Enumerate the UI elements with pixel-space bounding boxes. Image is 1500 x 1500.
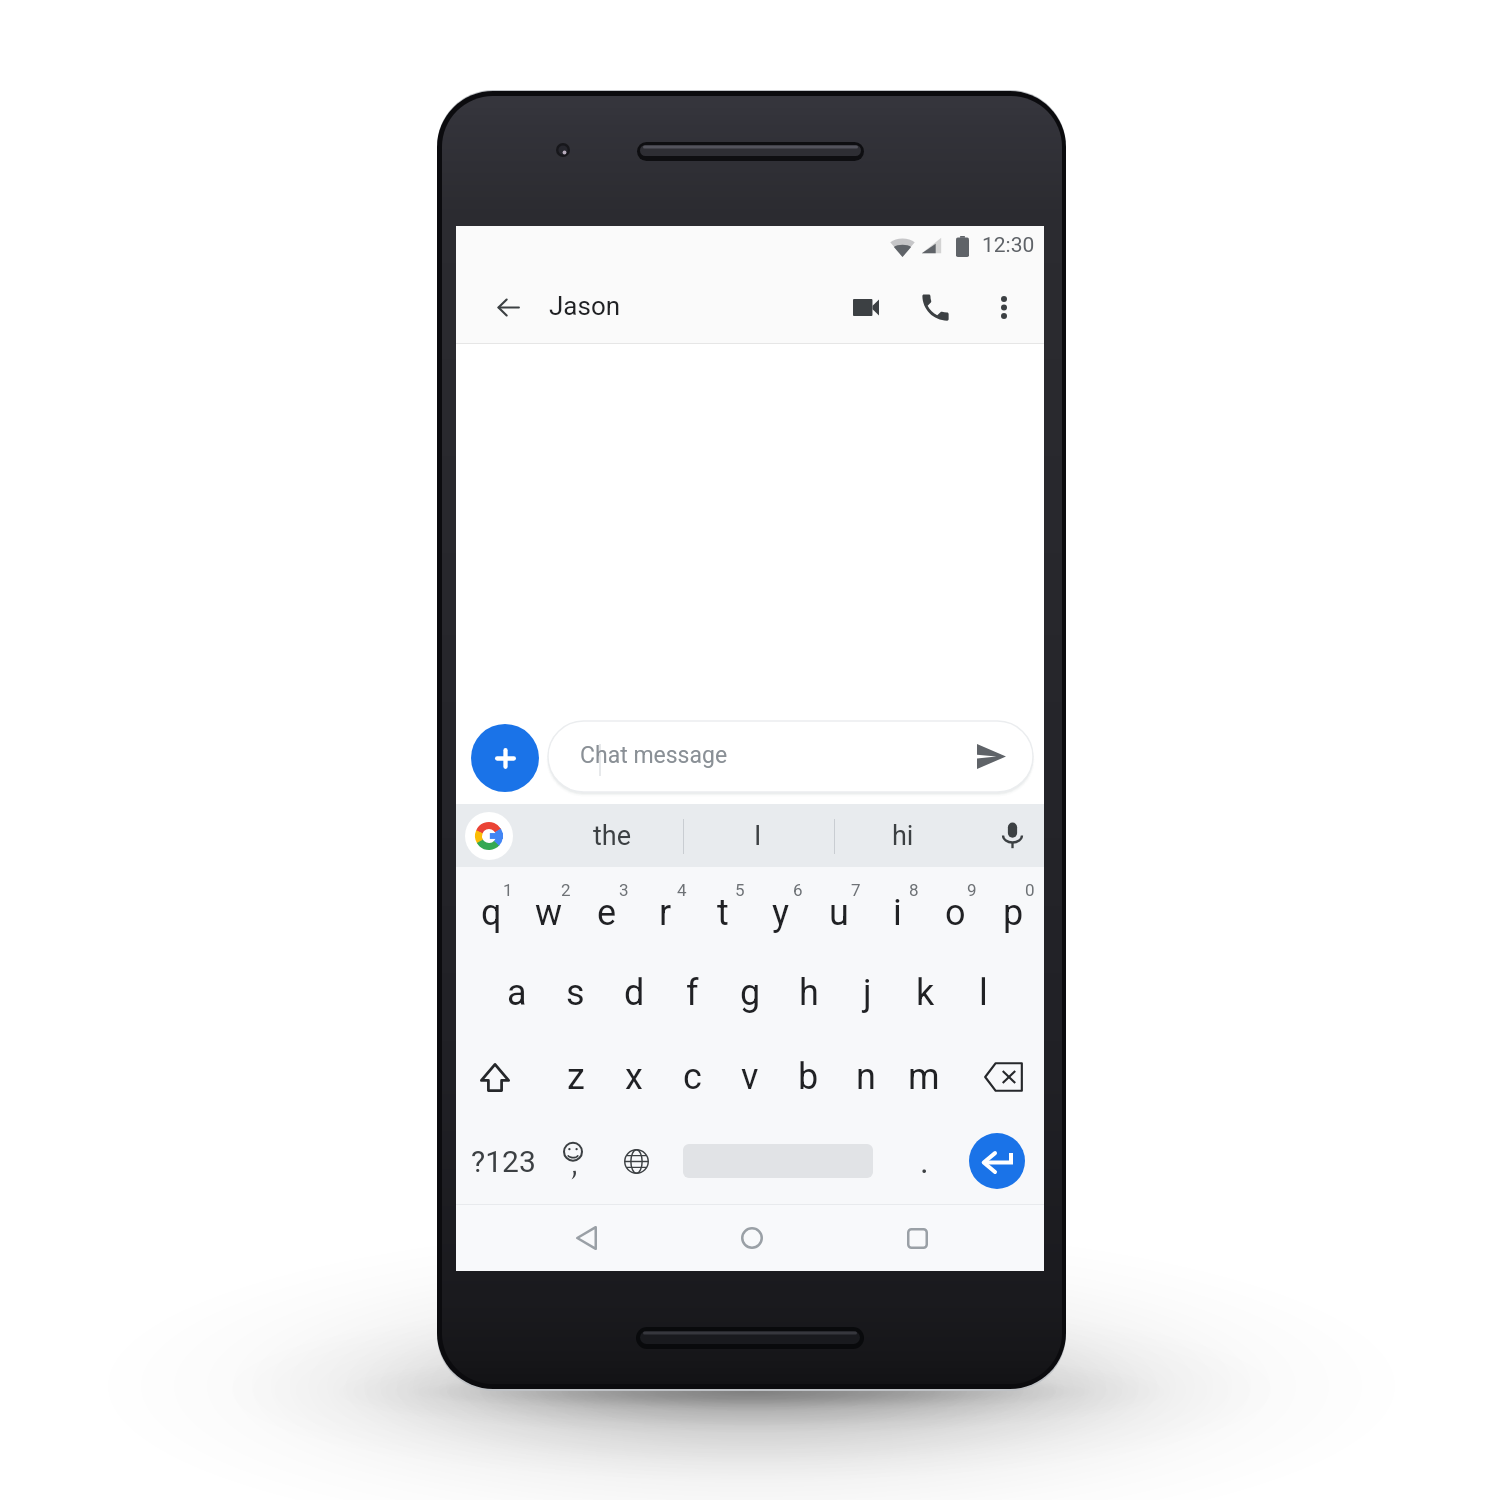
- staticText: 0: [1025, 880, 1035, 900]
- staticText: Chat message: [580, 742, 728, 769]
- staticText: I: [754, 820, 762, 852]
- staticText: z: [567, 1056, 585, 1098]
- button[interactable]: t: [694, 867, 752, 951]
- button[interactable]: k: [896, 951, 954, 1035]
- staticText: p: [1003, 892, 1024, 934]
- staticText: i: [893, 892, 902, 934]
- staticText: hi: [892, 820, 914, 852]
- button[interactable]: o: [926, 867, 984, 951]
- button[interactable]: p: [984, 867, 1042, 951]
- staticText: the: [593, 820, 632, 852]
- button[interactable]: Emoji: [543, 1119, 603, 1203]
- staticText: v: [741, 1056, 759, 1098]
- button[interactable]: ?123: [463, 1119, 543, 1203]
- staticText: 4: [677, 880, 687, 900]
- staticText: j: [863, 972, 872, 1014]
- staticText: 2: [561, 880, 571, 900]
- staticText: 1: [503, 880, 513, 900]
- button[interactable]: .: [894, 1119, 954, 1203]
- button[interactable]: s: [546, 951, 604, 1035]
- staticText: m: [908, 1056, 940, 1098]
- staticText: c: [683, 1056, 702, 1098]
- staticText: s: [566, 972, 585, 1014]
- staticText: o: [945, 892, 966, 934]
- staticText: h: [799, 972, 819, 1014]
- staticText: ?123: [471, 1144, 536, 1179]
- button[interactable]: c: [663, 1035, 721, 1119]
- button[interactable]: v: [721, 1035, 779, 1119]
- button[interactable]: Home: [719, 1205, 785, 1271]
- staticText: 7: [851, 880, 861, 900]
- staticText: 9: [967, 880, 977, 900]
- button[interactable]: d: [605, 951, 663, 1035]
- staticText: k: [916, 972, 935, 1014]
- button[interactable]: Voice input: [982, 804, 1042, 867]
- button[interactable]: Chat message: [548, 721, 1033, 792]
- button[interactable]: hi: [848, 804, 958, 867]
- staticText: w: [535, 892, 563, 934]
- staticText: n: [856, 1056, 876, 1098]
- button[interactable]: y: [752, 867, 810, 951]
- staticText: y: [772, 892, 790, 934]
- staticText: 5: [735, 880, 745, 900]
- staticText: b: [798, 1056, 819, 1098]
- button[interactable]: More options: [980, 283, 1028, 331]
- button[interactable]: h: [780, 951, 838, 1035]
- button[interactable]: Shift: [451, 1035, 539, 1119]
- button[interactable]: Send: [970, 735, 1013, 778]
- button[interactable]: Add attachment: [471, 724, 539, 792]
- button[interactable]: Space: [676, 1119, 880, 1203]
- button[interactable]: a: [488, 951, 546, 1035]
- button[interactable]: q: [462, 867, 520, 951]
- button[interactable]: Back: [484, 283, 532, 331]
- button[interactable]: r: [636, 867, 694, 951]
- button[interactable]: I: [703, 804, 813, 867]
- button[interactable]: Backspace: [959, 1035, 1047, 1119]
- staticText: 12:30: [982, 233, 1035, 258]
- staticText: 6: [793, 880, 803, 900]
- staticText: a: [507, 972, 527, 1014]
- button[interactable]: g: [721, 951, 779, 1035]
- staticText: 8: [909, 880, 919, 900]
- button[interactable]: n: [837, 1035, 895, 1119]
- button[interactable]: x: [605, 1035, 663, 1119]
- button[interactable]: i: [868, 867, 926, 951]
- staticText: d: [624, 972, 645, 1014]
- button[interactable]: l: [954, 951, 1012, 1035]
- staticText: e: [597, 892, 617, 934]
- button[interactable]: j: [838, 951, 896, 1035]
- staticText: r: [659, 892, 672, 934]
- staticText: x: [625, 1056, 643, 1098]
- button[interactable]: Back: [553, 1205, 619, 1271]
- button[interactable]: Google search: [465, 812, 513, 860]
- button[interactable]: Change language: [606, 1119, 666, 1203]
- button[interactable]: m: [895, 1035, 953, 1119]
- staticText: f: [686, 972, 699, 1014]
- button[interactable]: z: [547, 1035, 605, 1119]
- staticText: g: [740, 972, 761, 1014]
- staticText: l: [979, 972, 988, 1014]
- button[interactable]: Enter: [969, 1133, 1025, 1189]
- button[interactable]: b: [779, 1035, 837, 1119]
- staticText: q: [481, 892, 502, 934]
- staticText: 3: [619, 880, 629, 900]
- staticText: .: [920, 1142, 929, 1181]
- button[interactable]: Video call: [842, 283, 890, 331]
- button[interactable]: u: [810, 867, 868, 951]
- button[interactable]: Recent apps: [884, 1205, 950, 1271]
- button[interactable]: f: [663, 951, 721, 1035]
- staticText: t: [717, 892, 729, 934]
- button[interactable]: e: [578, 867, 636, 951]
- staticText: u: [829, 892, 849, 934]
- button[interactable]: w: [520, 867, 578, 951]
- button[interactable]: the: [557, 804, 667, 867]
- staticText: Jason: [549, 291, 621, 321]
- button[interactable]: Call: [911, 283, 959, 331]
